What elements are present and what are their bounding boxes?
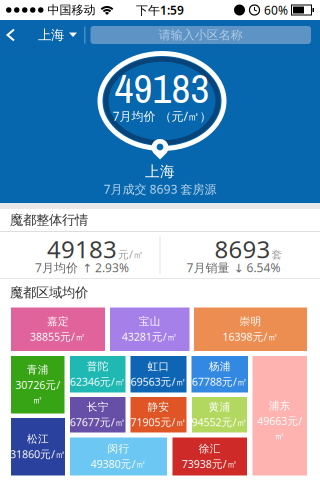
staticText: 普陀 <box>87 360 109 373</box>
staticText: 69563元/㎡ <box>130 374 186 389</box>
staticText: 43281元/㎡ <box>122 329 178 344</box>
staticText: ㎡ <box>274 429 285 442</box>
staticText: 黄浦 <box>208 400 230 413</box>
staticText: 上海 <box>38 27 64 43</box>
staticText: 崇明 <box>239 315 261 328</box>
staticText: 浦东 <box>269 399 291 412</box>
staticText: 上海 <box>145 162 175 180</box>
staticText: 魔都整体行情 <box>10 212 88 228</box>
staticText: 套 <box>271 248 282 261</box>
staticText: 94552元/㎡ <box>191 415 247 429</box>
staticText: 7月成交 8693 套房源 <box>103 181 216 197</box>
staticText: 16398元/㎡ <box>222 329 278 344</box>
staticText: 闵行 <box>107 442 129 455</box>
staticText: 62346元/㎡ <box>70 374 126 389</box>
staticText: 71905元/㎡ <box>130 415 186 429</box>
staticText: 7月均价 ↑ 2.93% <box>35 259 129 275</box>
staticText: 67677元/㎡ <box>70 415 126 429</box>
staticText: 请输入小区名称 <box>159 28 243 42</box>
staticText: 31860元/㎡ <box>10 447 66 461</box>
staticText: 49183 <box>47 233 117 265</box>
staticText: 30726元/ <box>15 378 60 392</box>
staticText: 嘉定 <box>47 315 69 328</box>
staticText: 青浦 <box>27 363 49 376</box>
staticText: 7月销量 ↓ 6.54% <box>186 259 280 275</box>
staticText: 宝山 <box>139 315 161 328</box>
staticText: 徐汇 <box>199 442 221 455</box>
staticText: 60% <box>264 2 288 18</box>
staticText: 38855元/㎡ <box>30 329 86 344</box>
staticText: 松江 <box>27 432 49 445</box>
staticText: 49380元/㎡ <box>90 457 146 471</box>
staticText: 49663元/ <box>257 414 302 428</box>
staticText: 7月均价 （元/㎡） <box>112 108 211 124</box>
staticText: 73938元/㎡ <box>182 457 238 471</box>
staticText: 中国移动 <box>47 3 95 17</box>
staticText: 49183 <box>114 60 209 116</box>
staticText: 元/㎡ <box>118 247 144 261</box>
staticText: 67788元/㎡ <box>192 374 248 389</box>
staticText: 魔都区域均价 <box>10 284 88 301</box>
staticText: 杨浦 <box>209 360 231 373</box>
staticText: ㎡ <box>32 393 43 406</box>
staticText: 静安 <box>147 400 169 413</box>
staticText: 虹口 <box>147 360 169 373</box>
staticText: 长宁 <box>87 400 109 413</box>
staticText: 下午1:59 <box>136 2 184 18</box>
staticText: 8693 <box>214 233 270 265</box>
